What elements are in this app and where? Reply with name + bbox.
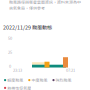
staticText: 23:13 xyxy=(13,67,22,73)
staticText: 熱帶性低氣壓 xyxy=(7,85,31,90)
staticText: 25 xyxy=(8,49,12,55)
staticText: 0 xyxy=(9,63,11,69)
staticText: 輕度颱風 xyxy=(7,77,23,83)
staticText: 2022/11/29 颱風動態 xyxy=(3,23,52,31)
button[interactable]: 熱帶性低氣壓 xyxy=(4,85,31,90)
staticText: 颱風路徑與衛星雲圖資訊，資料來源為中央氣象局，僅供參考 xyxy=(9,0,81,11)
staticText: 07:21 xyxy=(66,67,75,73)
button[interactable]: 強烈颱風 xyxy=(52,77,72,83)
staticText: 強烈颱風 xyxy=(56,77,72,83)
staticText: 50 xyxy=(8,35,12,41)
staticText: 中度颱風 xyxy=(31,77,47,83)
button[interactable]: 中度颱風 xyxy=(28,77,47,83)
button[interactable]: 輕度颱風 xyxy=(4,77,23,83)
